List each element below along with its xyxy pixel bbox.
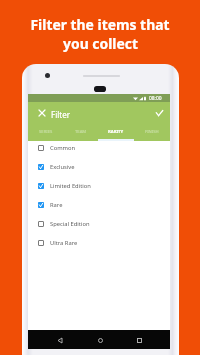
button[interactable]: Ultra Rare <box>28 233 170 252</box>
staticText: Exclusive <box>50 163 75 171</box>
staticText: you collect <box>63 34 138 53</box>
button[interactable]: SERIES <box>28 124 63 141</box>
staticText: Limited Edition <box>50 182 91 190</box>
button[interactable]: Close <box>31 102 53 124</box>
button[interactable]: Rare <box>28 195 170 214</box>
staticText: FINISH <box>145 129 159 135</box>
button[interactable]: Home <box>92 332 108 348</box>
button[interactable]: RARITY <box>98 124 134 141</box>
button[interactable]: Limited Edition <box>28 176 170 195</box>
button[interactable]: FINISH <box>134 124 170 141</box>
button[interactable]: Exclusive <box>28 157 170 176</box>
staticText: Rare <box>50 201 63 209</box>
staticText: Common <box>50 144 76 152</box>
button[interactable]: TEAM <box>63 124 98 141</box>
staticText: 08:00 <box>149 95 162 102</box>
button[interactable]: Back <box>52 332 68 348</box>
staticText: RARITY <box>108 129 124 135</box>
staticText: Filter the items that <box>30 15 170 34</box>
staticText: SERIES <box>39 129 53 135</box>
button[interactable]: Special Edition <box>28 214 170 233</box>
button[interactable]: Apply filter <box>148 102 170 124</box>
staticText: TEAM <box>75 129 87 135</box>
staticText: Filter <box>51 109 70 120</box>
staticText: Special Edition <box>50 220 90 228</box>
staticText: Ultra Rare <box>50 239 78 247</box>
button[interactable]: Recent apps <box>131 332 147 348</box>
button[interactable]: Common <box>28 138 170 157</box>
